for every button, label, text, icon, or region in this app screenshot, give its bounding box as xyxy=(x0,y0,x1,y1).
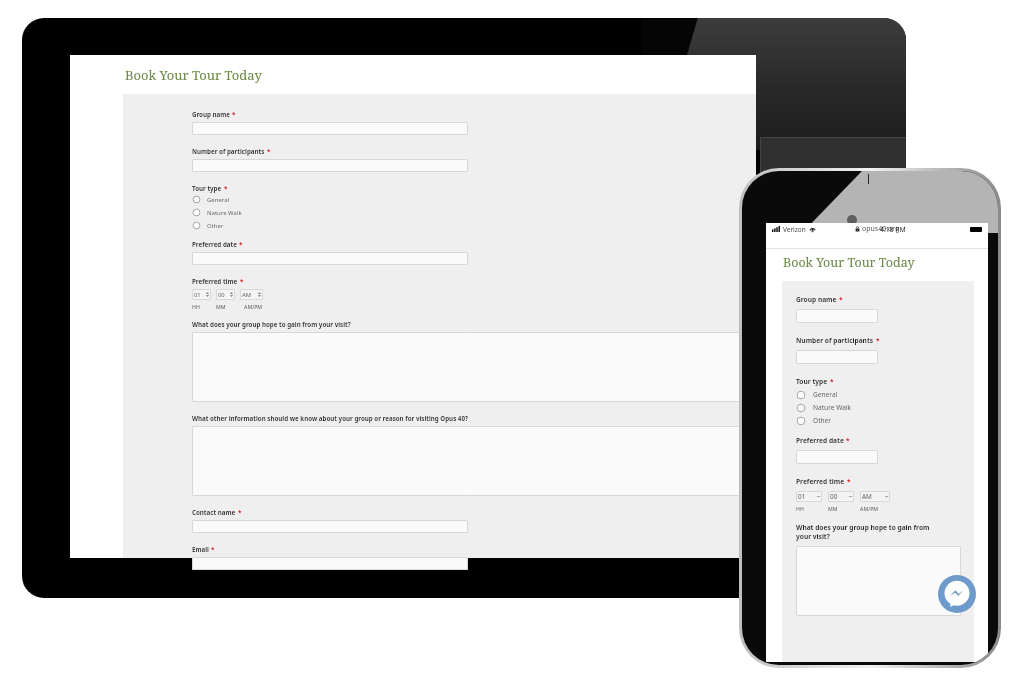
staticText: Number of participants xyxy=(796,336,874,345)
staticText: HH xyxy=(192,303,200,310)
staticText: * xyxy=(240,277,244,285)
staticText: * xyxy=(847,477,851,486)
staticText: MM xyxy=(216,303,226,310)
button[interactable]: Open Messenger chat xyxy=(938,575,976,613)
staticText: 4:18 PM xyxy=(880,225,906,234)
button[interactable] xyxy=(192,332,743,402)
button[interactable]: General xyxy=(796,388,838,401)
staticText: Verizon xyxy=(783,225,806,234)
staticText: * xyxy=(238,508,242,516)
staticText: AM/PM xyxy=(244,303,263,310)
staticText: opus40.org xyxy=(862,224,900,234)
staticText: MM xyxy=(828,505,838,512)
staticText: Nature Walk xyxy=(813,403,852,412)
staticText: * xyxy=(839,295,843,304)
staticText: * xyxy=(830,377,834,386)
button[interactable]: Other xyxy=(796,414,832,427)
button[interactable]: Other xyxy=(192,219,224,232)
button[interactable] xyxy=(192,520,468,533)
staticText: Other xyxy=(813,416,832,425)
button[interactable]: 01 xyxy=(192,289,211,300)
staticText: 00 xyxy=(218,291,225,299)
staticText: Preferred date xyxy=(796,436,844,445)
staticText: Group name xyxy=(796,295,837,304)
button[interactable] xyxy=(796,350,878,364)
staticText: Preferred time xyxy=(796,477,845,486)
button[interactable] xyxy=(796,546,961,616)
staticText: Tour type xyxy=(192,184,222,192)
button[interactable] xyxy=(796,450,878,464)
staticText: Book Your Tour Today xyxy=(783,254,915,271)
button[interactable]: 01 xyxy=(796,491,822,502)
staticText: What does your group hope to gain from y… xyxy=(192,320,351,328)
staticText: * xyxy=(211,545,215,553)
staticText: 01 xyxy=(194,291,201,299)
staticText: Book Your Tour Today xyxy=(125,66,262,84)
button[interactable] xyxy=(192,426,743,496)
staticText: Tour type xyxy=(796,377,828,386)
staticText: * xyxy=(239,240,243,248)
staticText: Contact name xyxy=(192,508,236,516)
staticText: Group name xyxy=(192,110,230,118)
staticText: Preferred time xyxy=(192,277,238,285)
staticText: * xyxy=(232,110,236,118)
staticText: * xyxy=(224,184,228,192)
staticText: 01 xyxy=(798,492,806,501)
button[interactable]: Nature Walk xyxy=(796,401,852,414)
staticText: What other information should we know ab… xyxy=(192,414,468,422)
button[interactable]: General xyxy=(192,193,230,206)
staticText: Nature Walk xyxy=(207,209,242,217)
button[interactable] xyxy=(192,252,468,265)
button[interactable] xyxy=(192,159,468,172)
staticText: 00 xyxy=(830,492,838,501)
staticText: Number of participants xyxy=(192,147,265,155)
staticText: General xyxy=(813,390,838,399)
button[interactable]: Nature Walk xyxy=(192,206,242,219)
staticText: AM xyxy=(242,291,251,299)
button[interactable] xyxy=(192,557,468,570)
staticText: General xyxy=(207,196,230,204)
button[interactable]: 00 xyxy=(216,289,235,300)
staticText: Other xyxy=(207,222,224,230)
staticText: AM/PM xyxy=(860,505,879,512)
staticText: * xyxy=(876,336,880,345)
button[interactable]: AM xyxy=(860,491,890,502)
button[interactable]: 00 xyxy=(828,491,854,502)
staticText: Preferred date xyxy=(192,240,237,248)
staticText: * xyxy=(846,436,850,445)
button[interactable]: AM xyxy=(240,289,263,300)
button[interactable] xyxy=(192,122,468,135)
staticText: HH xyxy=(796,505,804,512)
staticText: * xyxy=(267,147,271,155)
staticText: What does your group hope to gain from y… xyxy=(796,523,930,541)
staticText: Email xyxy=(192,545,209,553)
staticText: AM xyxy=(862,492,872,501)
button[interactable] xyxy=(796,309,878,323)
